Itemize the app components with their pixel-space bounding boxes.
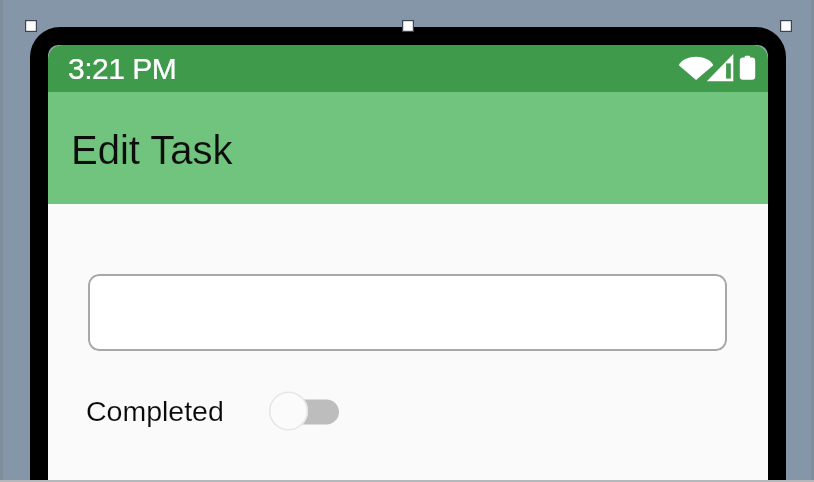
staticText: Edit Task <box>71 128 233 173</box>
staticText: 3:21 PM <box>68 52 177 86</box>
button[interactable]: Completed switch, off <box>269 385 341 437</box>
button[interactable]: Completed <box>86 385 341 437</box>
button[interactable] <box>88 274 727 351</box>
staticText: Completed <box>86 395 224 427</box>
